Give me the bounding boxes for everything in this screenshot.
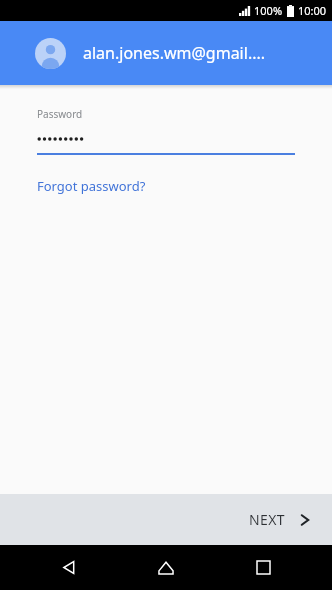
button[interactable]: Forgot password?: [37, 177, 146, 195]
staticText: Password: [37, 107, 83, 121]
button[interactable]: NEXT: [225, 494, 332, 545]
button[interactable]: Recent apps: [235, 545, 291, 590]
staticText: alan.jones.wm@gmail....: [83, 42, 266, 64]
staticText: 100%: [254, 3, 283, 18]
staticText: 10:00: [298, 3, 327, 18]
button[interactable]: Home: [138, 545, 194, 590]
staticText: Forgot password?: [37, 177, 146, 195]
staticText: NEXT: [249, 510, 286, 529]
button[interactable]: alan.jones.wm@gmail....: [0, 21, 332, 85]
button[interactable]: Back: [41, 545, 97, 590]
button[interactable]: [37, 131, 295, 147]
